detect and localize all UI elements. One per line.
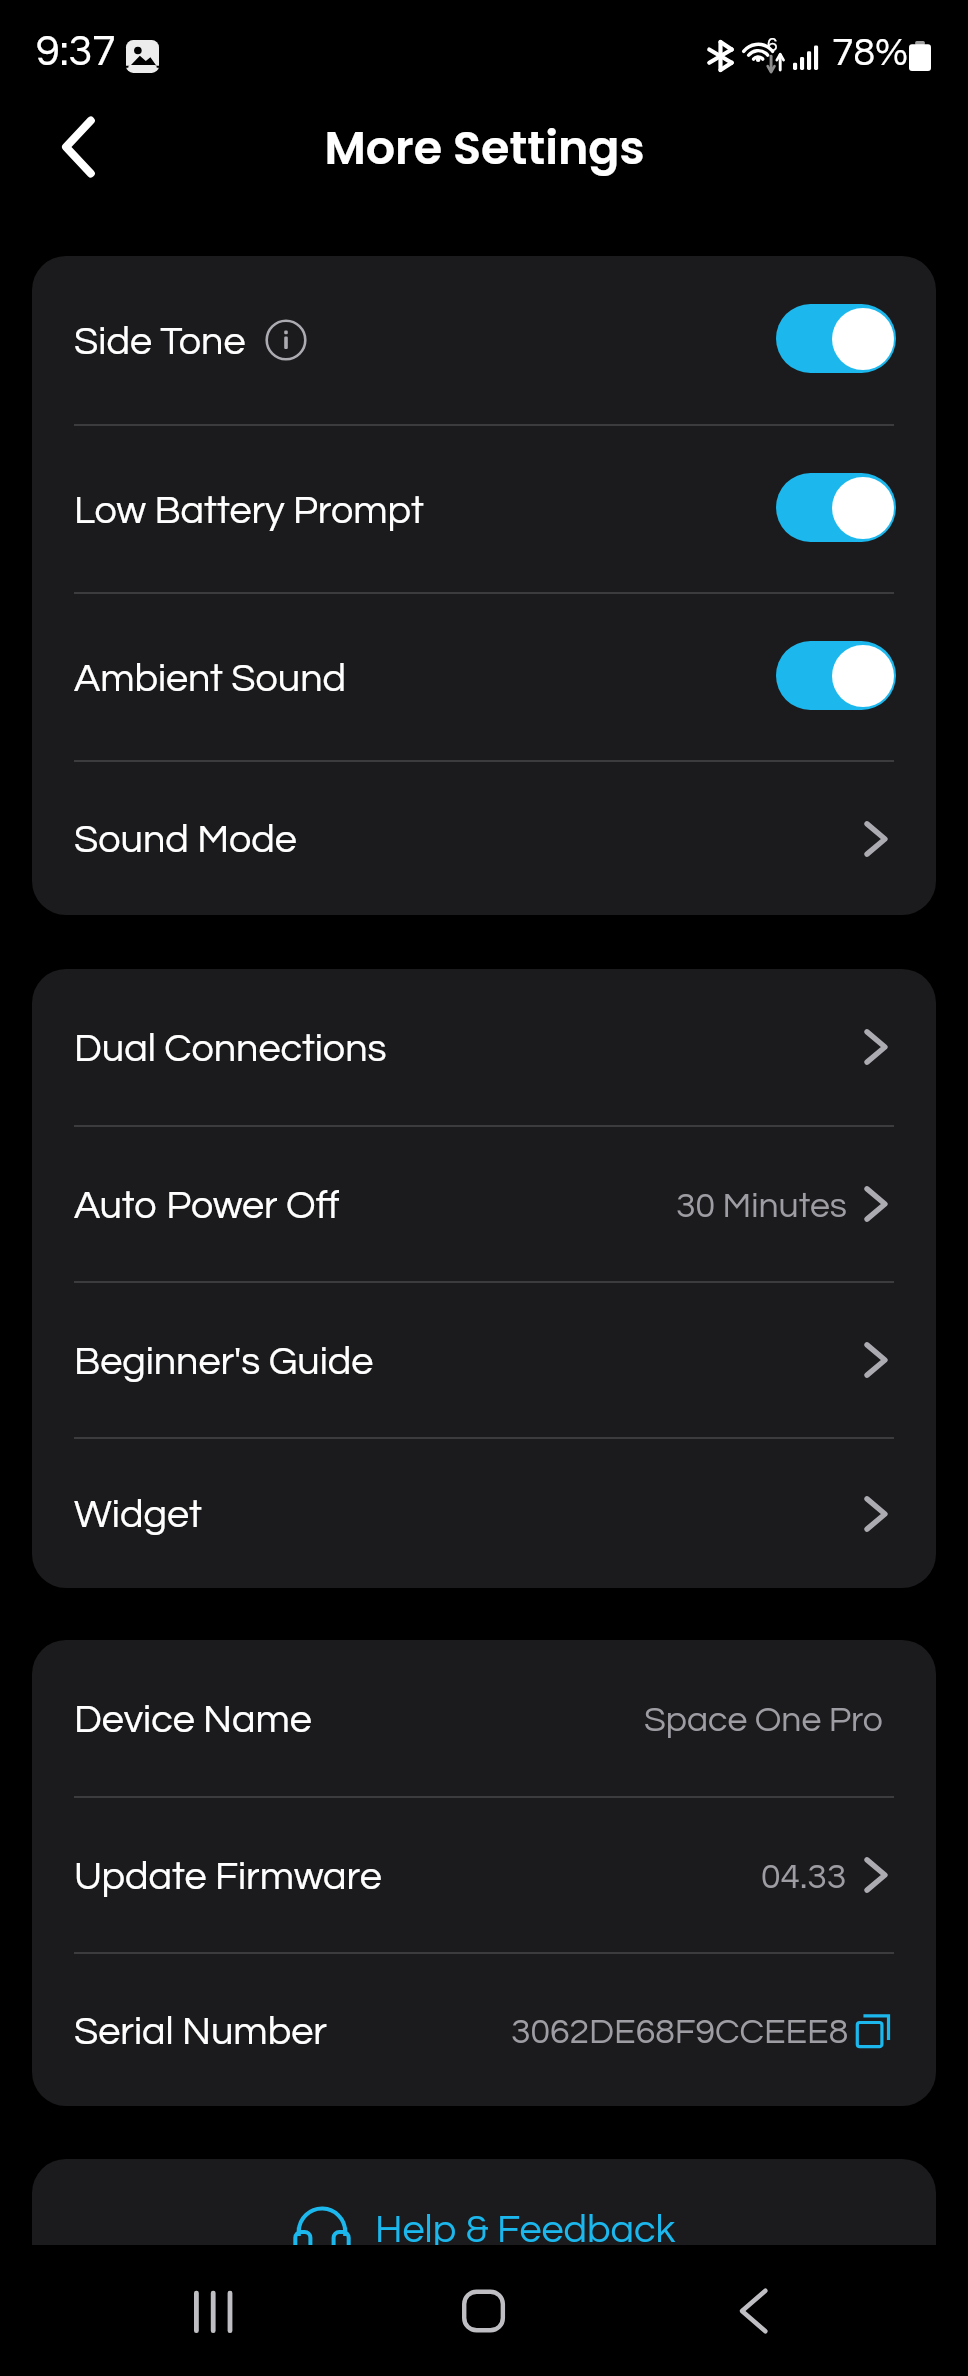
button[interactable]: Dual Connections [32, 969, 936, 1125]
staticText: 9:37 [36, 30, 116, 74]
staticText: Widget [74, 1495, 202, 1536]
button[interactable]: Toggle on [776, 473, 896, 542]
staticText: 30 Minutes [676, 1188, 847, 1225]
staticText: Auto Power Off [74, 1186, 340, 1227]
staticText: 04.33 [761, 1859, 847, 1896]
button[interactable]: Home [429, 2256, 539, 2366]
staticText: Help & Feedback [375, 2210, 676, 2251]
button[interactable]: Back [33, 102, 123, 192]
button[interactable]: Sound Mode [32, 762, 936, 915]
staticText: Device Name [74, 1700, 312, 1741]
staticText: Low Battery Prompt [74, 491, 424, 532]
staticText: Update Firmware [74, 1857, 382, 1898]
button[interactable]: Update Firmware [32, 1798, 936, 1952]
button[interactable]: Back [699, 2256, 809, 2366]
button[interactable]: Widget [32, 1439, 936, 1588]
staticText: Ambient Sound [74, 659, 346, 700]
staticText: Side Tone [74, 322, 246, 363]
staticText: More Settings [324, 116, 645, 180]
button[interactable]: Recent apps [160, 2256, 270, 2366]
staticText: 3062DE68F9CCEEE8 [511, 2014, 849, 2051]
button[interactable]: Side Tone [32, 256, 936, 424]
button[interactable]: Copy serial number [852, 2008, 896, 2052]
staticText: Dual Connections [74, 1029, 387, 1070]
button[interactable]: Toggle on [776, 641, 896, 710]
staticText: Beginner's Guide [74, 1342, 374, 1383]
button[interactable]: Low Battery Prompt [32, 426, 936, 592]
button[interactable]: Toggle on [776, 304, 896, 373]
staticText: 6 [767, 35, 778, 55]
button[interactable]: Help & Feedback [32, 2159, 936, 2315]
button[interactable]: Serial Number [32, 1954, 936, 2106]
button[interactable]: Beginner's Guide [32, 1283, 936, 1437]
button[interactable]: Auto Power Off [32, 1127, 936, 1281]
staticText: Space One Pro [644, 1702, 883, 1739]
button[interactable]: Device Name [32, 1640, 936, 1796]
button[interactable]: Ambient Sound [32, 594, 936, 760]
staticText: Sound Mode [74, 820, 297, 861]
staticText: Serial Number [74, 2012, 327, 2053]
staticText: 78% [832, 33, 908, 73]
